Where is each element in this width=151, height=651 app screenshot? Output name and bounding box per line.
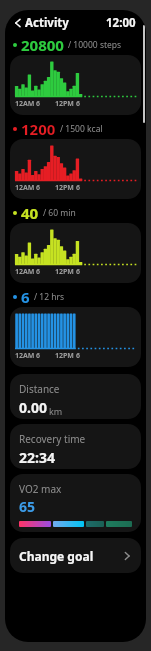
button[interactable]: Recovery time [10, 424, 141, 469]
staticText: 20800 [21, 35, 64, 55]
button[interactable]: VO2 max [10, 474, 141, 532]
staticText: Activity [25, 15, 69, 31]
staticText: / 60 min [43, 207, 76, 219]
staticText: / 1500 kcal [60, 123, 103, 135]
button[interactable]: 12AM [10, 139, 141, 199]
staticText: 6 [76, 99, 81, 109]
staticText: / 10000 steps [68, 39, 122, 51]
button[interactable]: Back [10, 15, 25, 30]
staticText: 0.00 [19, 398, 47, 417]
staticText: VO2 max [19, 482, 62, 496]
button[interactable]: Change goal [10, 538, 141, 573]
staticText: 6 [36, 99, 41, 109]
staticText: 6 [36, 267, 41, 277]
staticText: 12PM [55, 99, 74, 109]
button[interactable]: 12AM [10, 223, 141, 283]
staticText: 6 [76, 351, 81, 361]
staticText: 65 [19, 497, 36, 516]
staticText: 12PM [55, 351, 74, 361]
staticText: 6 [76, 267, 81, 277]
staticText: 12AM [15, 351, 35, 361]
staticText: km [49, 405, 63, 417]
staticText: 22:34 [19, 448, 55, 467]
staticText: 6 [21, 287, 30, 307]
staticText: 12PM [55, 183, 74, 193]
staticText: Change goal [19, 548, 94, 564]
staticText: 12:00 [106, 15, 136, 31]
staticText: 12AM [15, 99, 35, 109]
staticText: Recovery time [19, 432, 86, 446]
staticText: 40 [21, 203, 39, 223]
staticText: 12PM [55, 267, 74, 277]
staticText: Distance [19, 382, 60, 396]
staticText: 12AM [15, 267, 35, 277]
staticText: 1200 [21, 119, 56, 139]
staticText: / 12 hrs [34, 291, 65, 303]
button[interactable]: 12AM [10, 307, 141, 367]
staticText: 6 [36, 351, 41, 361]
staticText: 12AM [15, 183, 35, 193]
staticText: 6 [76, 183, 81, 193]
button[interactable]: 12AM [10, 55, 141, 115]
staticText: 6 [36, 183, 41, 193]
button[interactable]: Distance [10, 374, 141, 419]
